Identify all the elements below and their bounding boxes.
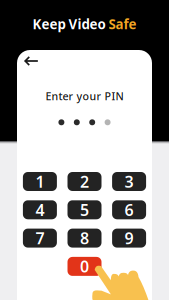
staticText: 6	[125, 199, 134, 220]
staticText: 1	[35, 171, 44, 192]
staticText: 9	[125, 227, 134, 249]
staticText: Safe	[108, 15, 136, 33]
staticText: 8	[80, 227, 89, 249]
button[interactable]: 6	[112, 200, 146, 219]
button[interactable]: 2	[67, 172, 101, 191]
staticText: 3	[125, 171, 134, 192]
button[interactable]: 5	[67, 200, 101, 219]
button[interactable]: 9	[112, 229, 146, 248]
button[interactable]: 3	[112, 172, 146, 191]
staticText: Keep Video	[32, 15, 108, 33]
button[interactable]: 8	[67, 229, 101, 248]
button[interactable]: 0	[67, 257, 101, 276]
staticText: 7	[35, 227, 44, 249]
staticText: 2	[80, 171, 89, 192]
staticText: Enter your PIN	[45, 89, 123, 103]
button[interactable]: 4	[23, 200, 57, 219]
button[interactable]: 7	[23, 229, 57, 248]
button[interactable]: 1	[23, 172, 57, 191]
staticText: 4	[35, 199, 44, 220]
staticText: 5	[80, 199, 89, 220]
staticText: 0	[80, 256, 89, 277]
button[interactable]: Back	[19, 51, 43, 71]
